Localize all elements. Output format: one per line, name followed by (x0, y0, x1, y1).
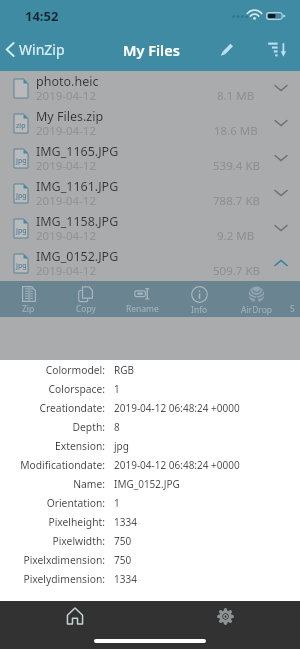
staticText: Depth: (0, 420, 105, 434)
button[interactable]: zip (0, 106, 300, 141)
staticText: IMG_0152.JPG (114, 477, 180, 491)
staticText: 9.2 MB (217, 228, 255, 244)
staticText: 18.6 MB (214, 123, 258, 139)
staticText: 750 (114, 534, 132, 548)
staticText: 1 (114, 496, 120, 510)
staticText: Zip (22, 303, 35, 315)
staticText: jpg (16, 191, 27, 201)
button[interactable]: Sort (258, 31, 294, 67)
staticText: S (290, 303, 295, 315)
button[interactable]: jpg (0, 246, 300, 281)
staticText: 2019-04-12 06:48:24 +0000 (114, 401, 240, 415)
staticText: Rename (126, 303, 159, 315)
button[interactable]: S (285, 281, 300, 317)
staticText: IMG_0152.JPG (36, 248, 119, 265)
button[interactable]: jpg (0, 211, 300, 246)
staticText: 8 (114, 420, 120, 434)
staticText: Colorspace: (0, 382, 105, 396)
staticText: Extension: (0, 439, 105, 453)
button[interactable]: Zip (0, 281, 57, 317)
staticText: jpg (16, 261, 27, 271)
staticText: Modificationdate: (0, 458, 105, 472)
button[interactable]: Rename (114, 281, 171, 317)
staticText: jpg (16, 226, 27, 236)
staticText: IMG_1161.JPG (36, 178, 119, 195)
staticText: Pixelwidth: (0, 534, 105, 548)
button[interactable]: Home (0, 601, 150, 631)
staticText: 14:52 (25, 7, 59, 25)
staticText: 788.7 KB (213, 193, 260, 209)
staticText: 509.7 KB (213, 263, 260, 279)
button[interactable]: photo.heic (0, 71, 300, 106)
staticText: IMG_1165.JPG (36, 143, 119, 160)
button[interactable]: jpg (0, 176, 300, 211)
staticText: jpg (16, 156, 27, 166)
staticText: Orientation: (0, 496, 105, 510)
staticText: 750 (114, 553, 132, 567)
staticText: 2019-04-12 (36, 88, 97, 104)
button[interactable]: WinZip (0, 35, 73, 64)
button[interactable]: AirDrop (228, 281, 285, 317)
button[interactable]: Copy (57, 281, 114, 317)
staticText: My Files (123, 40, 180, 60)
staticText: Name: (0, 477, 105, 491)
staticText: RGB (114, 363, 134, 377)
staticText: 2019-04-12 (36, 193, 97, 209)
staticText: 2019-04-12 (36, 158, 97, 174)
staticText: Pixelydimension: (0, 572, 105, 586)
staticText: AirDrop (241, 304, 273, 316)
button[interactable]: jpg (0, 141, 300, 176)
staticText: photo.heic (36, 73, 99, 90)
staticText: zip (16, 121, 26, 131)
staticText: 8.1 MB (217, 88, 255, 104)
staticText: My Files.zip (36, 108, 104, 125)
staticText: Colormodel: (0, 363, 105, 377)
button[interactable]: Edit (209, 31, 245, 67)
staticText: Copy (76, 303, 96, 315)
staticText: 539.4 KB (213, 158, 260, 174)
staticText: Info (191, 304, 208, 316)
staticText: Creationdate: (0, 401, 105, 415)
staticText: 2019-04-12 06:48:24 +0000 (114, 458, 240, 472)
staticText: IMG_1158.JPG (36, 213, 119, 230)
staticText: WinZip (19, 40, 65, 59)
button[interactable]: Info (171, 281, 228, 317)
staticText: 1334 (114, 572, 137, 586)
staticText: Pixelheight: (0, 515, 105, 529)
staticText: 2019-04-12 (36, 228, 97, 244)
button[interactable]: Settings (150, 601, 300, 631)
staticText: jpg (114, 439, 129, 453)
staticText: 2019-04-12 (36, 263, 97, 279)
staticText: 1334 (114, 515, 137, 529)
staticText: 1 (114, 382, 120, 396)
staticText: 2019-04-12 (36, 123, 97, 139)
staticText: Pixelxdimension: (0, 553, 105, 567)
